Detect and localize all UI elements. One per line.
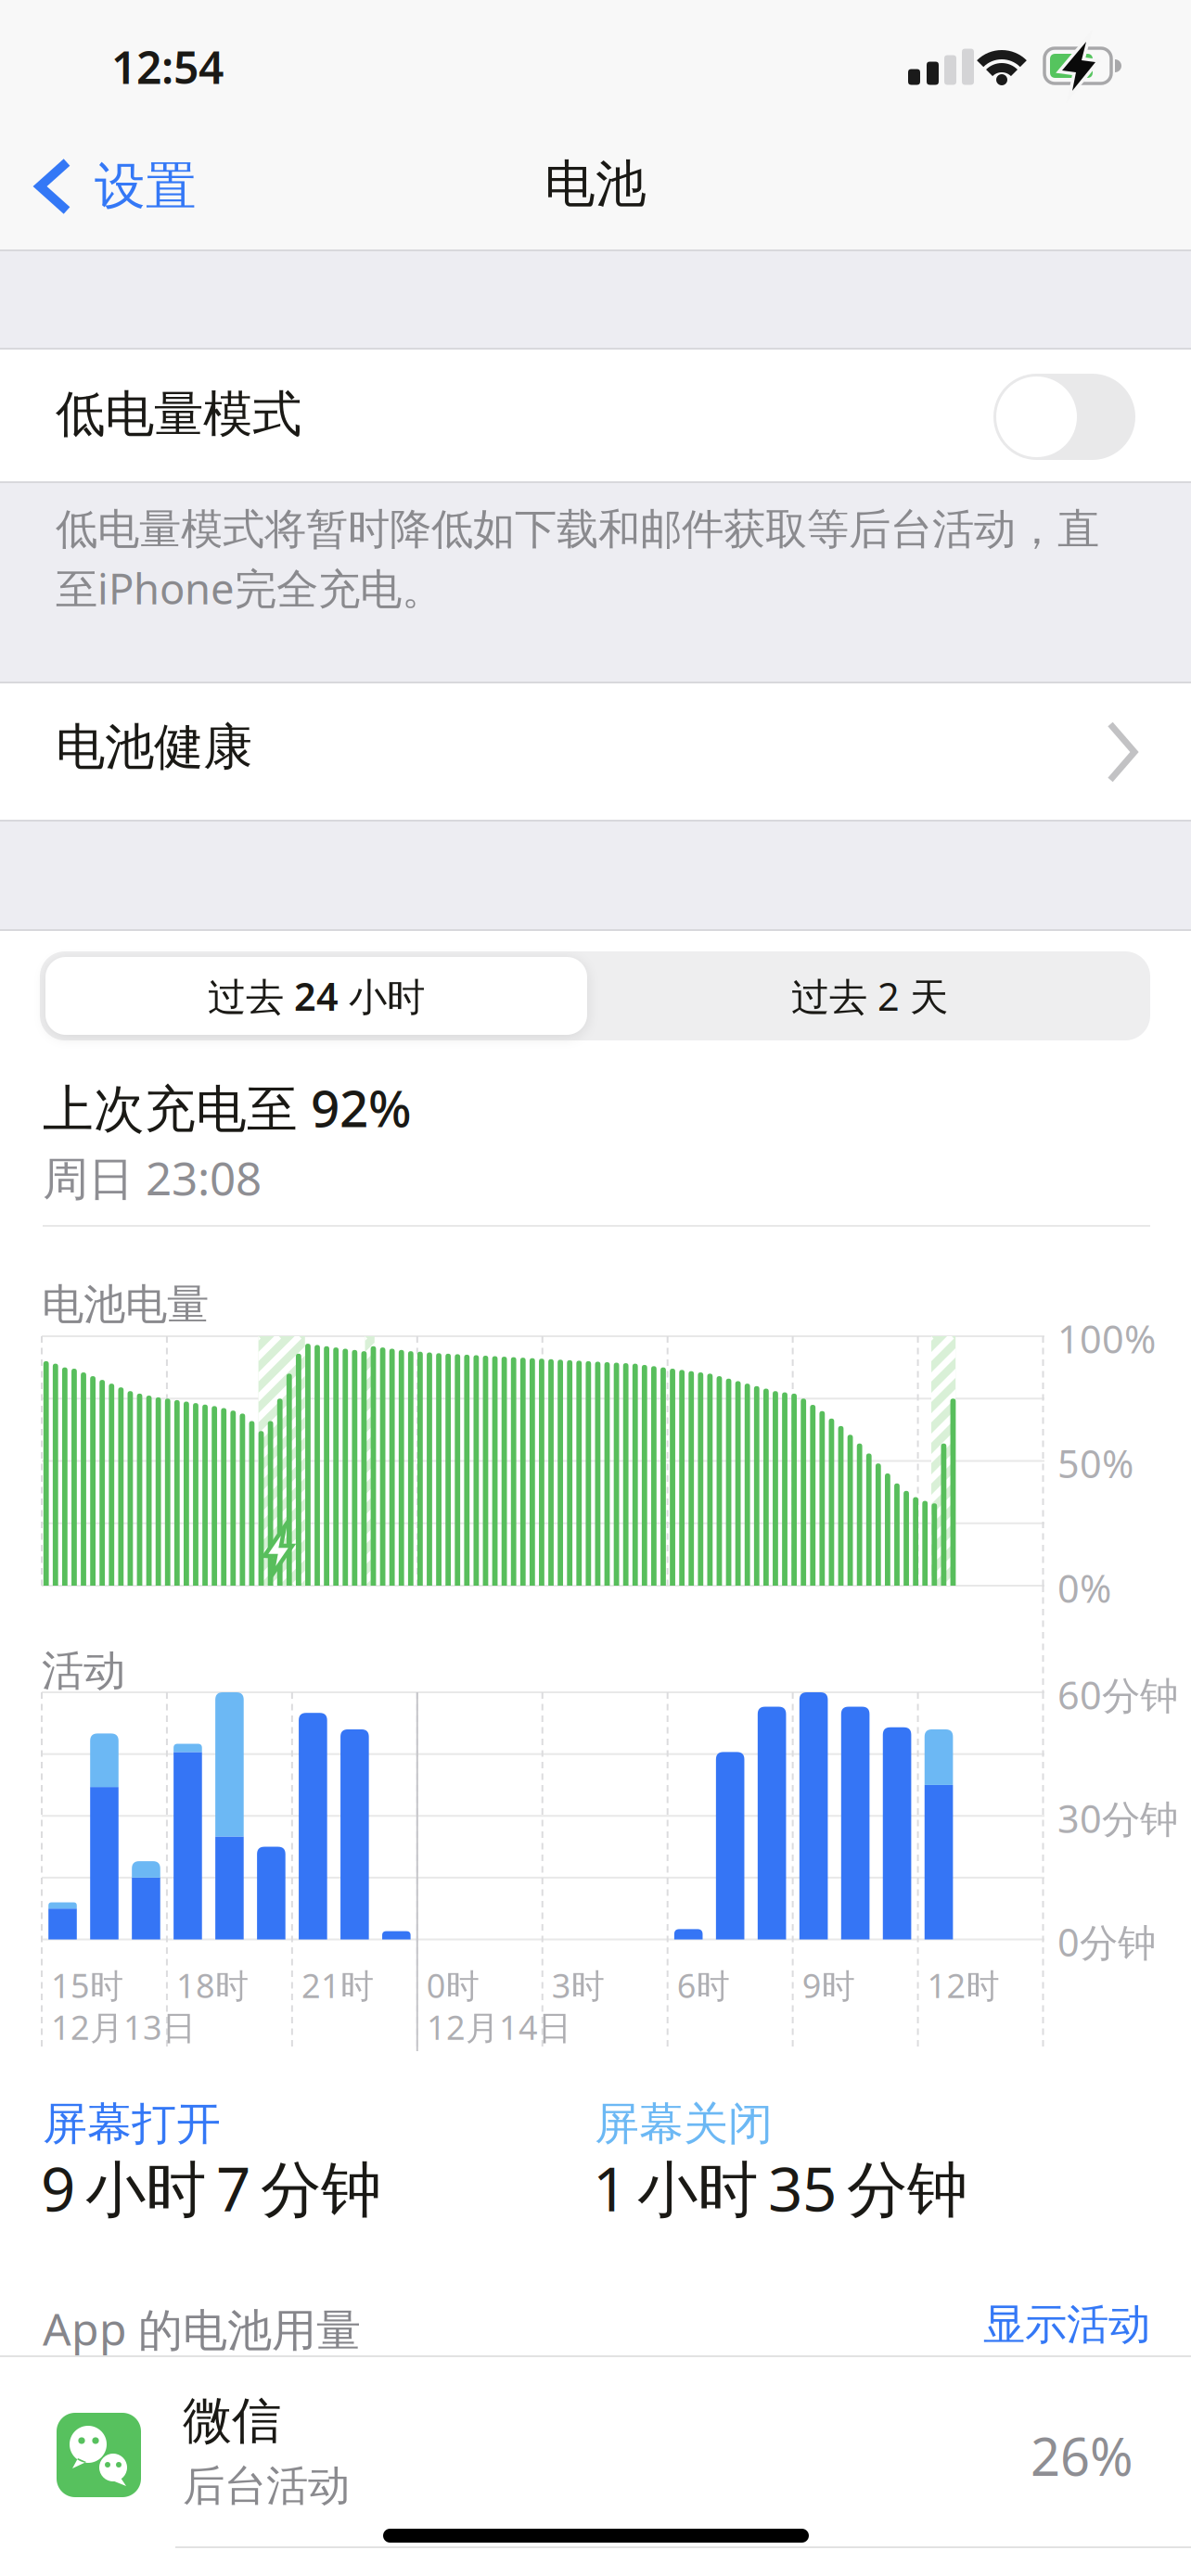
button[interactable]: 过去 24 小时 [45, 957, 587, 1035]
staticText: 电池 [544, 153, 647, 215]
staticText: 1 小时 35 分钟 [593, 2148, 967, 2228]
staticText: 12月14日 [427, 2005, 571, 2049]
staticText: 0时 [426, 1963, 479, 2007]
button[interactable]: 显示活动 [983, 2299, 1150, 2350]
staticText: 周日 23:08 [43, 1147, 262, 1208]
staticText: 后台活动 [183, 2460, 350, 2512]
staticText: 21时 [301, 1963, 374, 2007]
staticText: 30分钟 [1057, 1793, 1178, 1844]
staticText: 低电量模式将暂时降低如下载和邮件获取等后台活动，直 [56, 504, 1099, 555]
button[interactable]: 过去 2 天 [595, 957, 1145, 1035]
staticText: 6时 [677, 1963, 730, 2007]
staticText: 3时 [552, 1963, 605, 2007]
button[interactable]: 微信 [0, 2357, 1191, 2546]
staticText: 0% [1057, 1562, 1111, 1613]
staticText: 18时 [176, 1963, 248, 2007]
staticText: 电池电量 [42, 1279, 209, 1330]
button[interactable]: 设置 [35, 158, 197, 215]
staticText: 12时 [927, 1963, 1000, 2007]
staticText: 屏幕打开 [43, 2097, 221, 2151]
staticText: 9时 [802, 1963, 855, 2007]
staticText: 低电量模式 [56, 384, 301, 445]
staticText: 活动 [42, 1645, 125, 1697]
staticText: 屏幕关闭 [595, 2097, 773, 2151]
staticText: 上次充电至 92% [43, 1074, 412, 1141]
button[interactable]: 电池健康 [0, 683, 1191, 820]
staticText: 9 小时 7 分钟 [41, 2148, 381, 2228]
button[interactable]: 低电量模式 [0, 350, 1191, 481]
staticText: 电池健康 [56, 717, 252, 778]
staticText: App 的电池用量 [43, 2299, 361, 2358]
staticText: 12月13日 [51, 2005, 196, 2049]
staticText: 26% [1031, 2421, 1133, 2490]
staticText: 微信 [183, 2391, 281, 2451]
staticText: 15时 [51, 1963, 123, 2007]
staticText: 100% [1057, 1313, 1156, 1364]
staticText: 至iPhone完全充电。 [56, 560, 443, 616]
staticText: 过去 2 天 [791, 970, 948, 1021]
staticText: 12:54 [111, 37, 224, 96]
staticText: 50% [1057, 1438, 1133, 1489]
staticText: 设置 [95, 155, 197, 217]
staticText: 60分钟 [1057, 1669, 1178, 1720]
staticText: 过去 24 小时 [208, 970, 425, 1021]
staticText: 0分钟 [1057, 1916, 1156, 1967]
staticText: 显示活动 [983, 2299, 1150, 2350]
